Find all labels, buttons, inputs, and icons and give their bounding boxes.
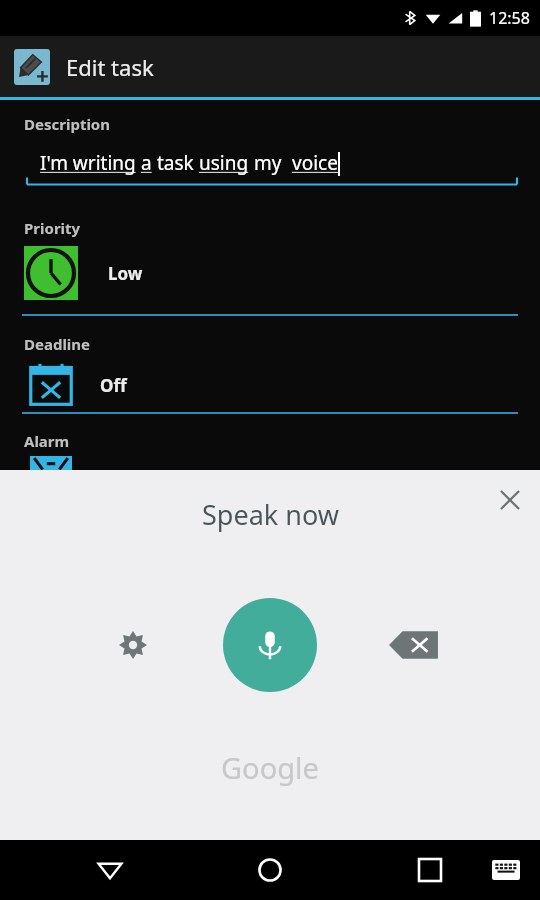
button[interactable]: Home	[246, 846, 294, 894]
staticText: Speak now	[202, 496, 339, 533]
button[interactable]: Microphone	[223, 598, 317, 692]
staticText: I'm writing	[40, 150, 136, 176]
staticText: Priority	[24, 218, 81, 238]
button[interactable]: Switch keyboard	[484, 848, 528, 892]
button[interactable]: Settings	[108, 620, 158, 670]
staticText: Off	[100, 374, 127, 397]
staticText: Deadline	[24, 334, 91, 354]
staticText: task	[152, 150, 199, 176]
staticText: 12:58	[489, 7, 530, 29]
staticText: Edit task	[66, 52, 154, 82]
button[interactable]: Low	[0, 244, 540, 302]
staticText: voice	[292, 150, 338, 176]
staticText: Low	[108, 262, 143, 285]
staticText: Alarm	[24, 431, 70, 451]
button[interactable]: Edit task	[0, 36, 540, 98]
staticText: using	[199, 150, 249, 176]
button[interactable]: Close	[488, 478, 532, 522]
staticText: Description	[24, 114, 110, 134]
staticText: Google	[221, 748, 319, 787]
button[interactable]: Delete	[388, 626, 440, 664]
button[interactable]: I'm writing	[40, 150, 540, 176]
button[interactable]: Off	[0, 358, 540, 412]
staticText: a	[141, 150, 152, 176]
button[interactable]: Back	[86, 846, 134, 894]
staticText: my	[249, 150, 292, 176]
button[interactable]: Recent apps	[406, 846, 454, 894]
